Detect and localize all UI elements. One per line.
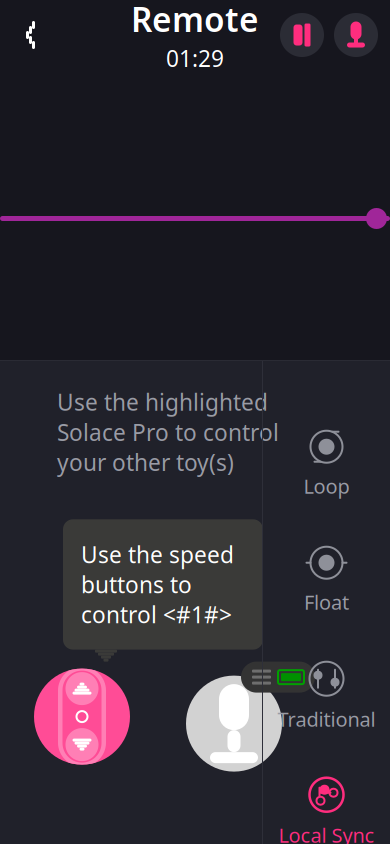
staticText: Traditional — [277, 706, 375, 732]
staticText: Remote — [131, 0, 259, 41]
button[interactable]: Back — [12, 13, 56, 57]
staticText: 01:29 — [166, 43, 224, 73]
staticText: Local Sync — [278, 822, 374, 844]
staticText: Use the highlighted Solace Pro to contro… — [57, 387, 279, 477]
button[interactable]: Plug toy, battery full — [186, 662, 336, 772]
button[interactable]: Plug toy — [334, 13, 378, 57]
button[interactable]: Wand toy — [280, 13, 324, 57]
staticText: Loop — [303, 473, 349, 499]
staticText: Use the speed buttons to control <#1#> — [81, 539, 234, 630]
staticText: Float — [304, 589, 349, 615]
button[interactable]: Solace Pro, selected — [34, 665, 130, 769]
button[interactable]: Float — [264, 543, 389, 617]
button[interactable]: Loop — [264, 427, 389, 501]
button[interactable]: Traditional — [264, 659, 389, 733]
button[interactable]: Local Sync — [264, 775, 389, 844]
